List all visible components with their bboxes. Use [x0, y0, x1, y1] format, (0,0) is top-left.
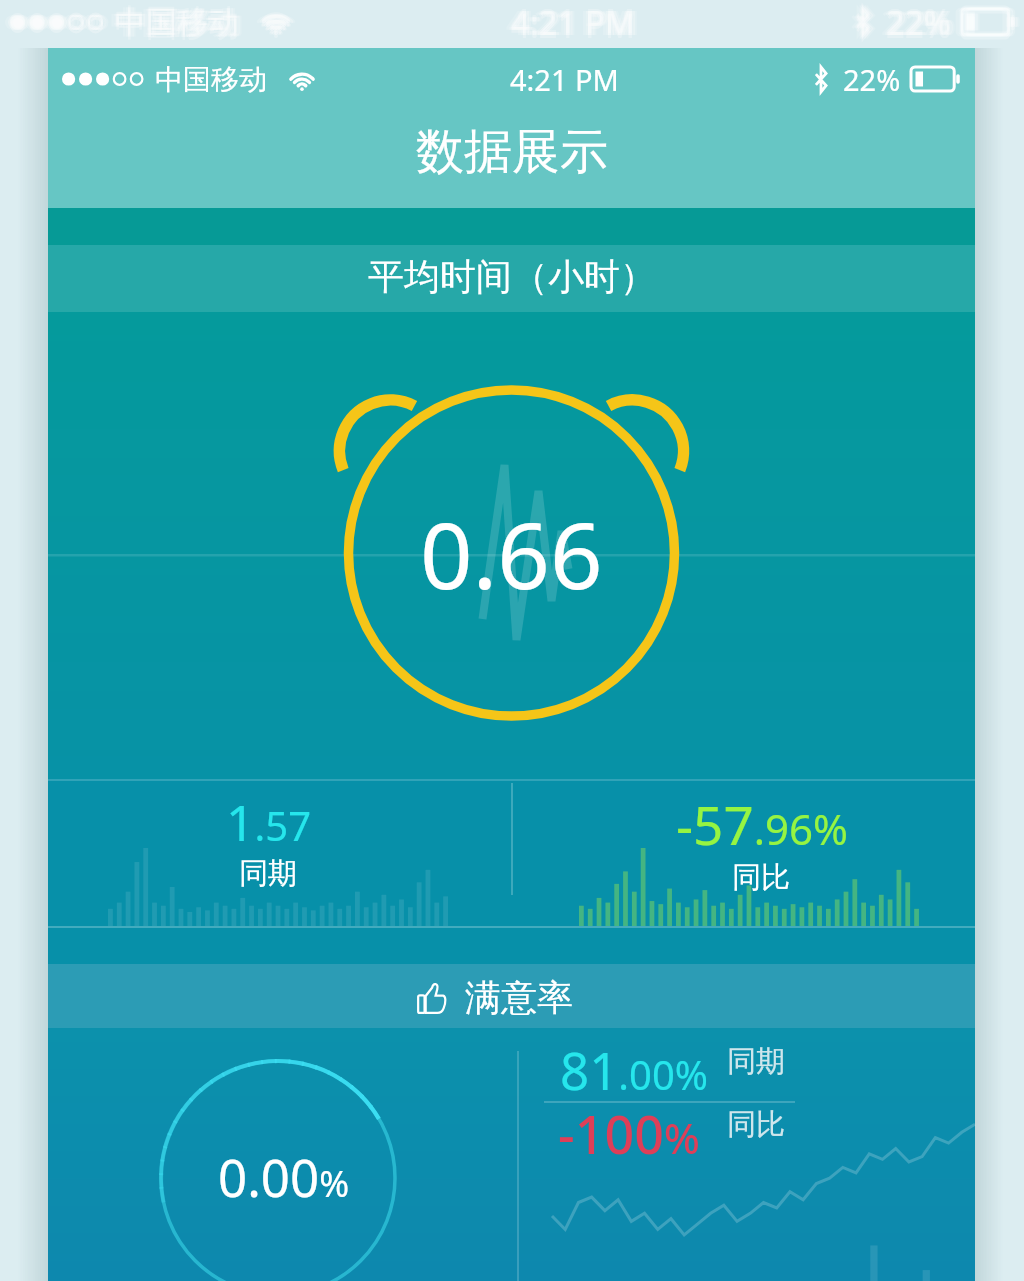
- staticText: 4:21 PM: [506, 0, 630, 44]
- staticText: 4:21 PM: [514, 0, 638, 44]
- staticText: 同比: [732, 859, 790, 896]
- staticText: 81.00%: [560, 1035, 709, 1104]
- staticText: 22%: [886, 0, 952, 42]
- staticText: 中国移动: [110, 3, 234, 42]
- staticText: 满意率: [465, 975, 573, 1020]
- button[interactable]: 1.57: [48, 779, 511, 964]
- staticText: 中国移动: [113, 3, 237, 42]
- button[interactable]: 平均时间（小时）: [48, 245, 975, 312]
- staticText: 4:21 PM: [511, 3, 635, 47]
- button[interactable]: -57.96%: [511, 779, 975, 964]
- staticText: 中国移动: [115, 6, 239, 45]
- staticText: 0.66: [420, 491, 603, 616]
- staticText: 同期: [727, 1043, 785, 1080]
- staticText: 同期: [239, 855, 297, 892]
- staticText: 中国移动: [118, 3, 242, 42]
- staticText: 平均时间（小时）: [368, 254, 656, 299]
- staticText: 1.57: [226, 788, 312, 856]
- staticText: 4:21 PM: [511, 0, 635, 44]
- staticText: 22%: [881, 0, 947, 44]
- staticText: 中国移动: [115, 1, 239, 40]
- staticText: 22%: [891, 0, 957, 44]
- staticText: -100%: [558, 1098, 700, 1169]
- button[interactable]: 满意率: [48, 964, 975, 1028]
- staticText: -57.96%: [676, 788, 848, 860]
- staticText: 22%: [843, 60, 901, 99]
- staticText: 0.00%: [218, 1142, 350, 1211]
- staticText: 22%: [884, 0, 950, 44]
- staticText: 中国移动: [120, 3, 244, 42]
- staticText: 22%: [886, 0, 952, 44]
- button[interactable]: 数据展示: [48, 110, 975, 208]
- staticText: 4:21 PM: [509, 0, 633, 44]
- staticText: 中国移动: [155, 62, 267, 97]
- staticText: 22%: [889, 0, 955, 44]
- staticText: 22%: [886, 3, 952, 47]
- staticText: 数据展示: [416, 122, 608, 182]
- staticText: 4:21 PM: [510, 60, 619, 99]
- staticText: 中国移动: [115, 3, 239, 42]
- staticText: 4:21 PM: [511, 0, 635, 42]
- staticText: 同比: [727, 1106, 785, 1143]
- staticText: 4:21 PM: [516, 0, 640, 44]
